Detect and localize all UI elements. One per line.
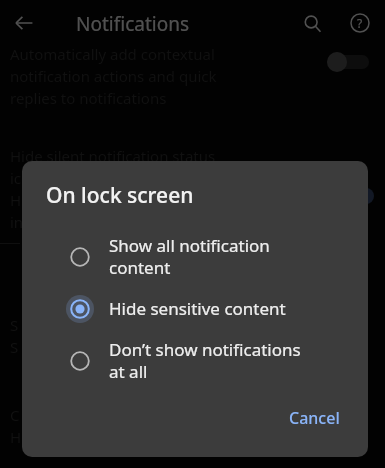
button[interactable]: Don’t show notifications at all	[22, 332, 368, 389]
staticText: replies to notifications	[10, 88, 167, 108]
staticText: ?	[357, 15, 363, 31]
staticText: Automatically add contextual	[10, 44, 215, 64]
button[interactable]: Cancel	[279, 401, 350, 435]
staticText: C	[10, 405, 20, 425]
staticText: in	[10, 212, 24, 232]
button[interactable]: Help	[344, 7, 376, 39]
button[interactable]: Toggle	[327, 51, 369, 73]
staticText: S	[10, 337, 19, 357]
staticText: Cancel	[289, 407, 340, 429]
staticText: S	[10, 315, 19, 335]
staticText: Hide sensitive content	[109, 297, 286, 320]
staticText: On lock screen	[46, 181, 194, 210]
staticText: Hide silent notification status	[10, 146, 216, 166]
staticText: Don’t show notifications at all	[109, 338, 301, 383]
button[interactable]: Show all notification content	[22, 228, 368, 285]
staticText: H	[10, 427, 22, 447]
staticText: ic	[10, 168, 22, 188]
button[interactable]: Search	[296, 7, 328, 39]
staticText: H	[10, 190, 22, 210]
button[interactable]: Back	[8, 7, 40, 39]
staticText: Notifications	[76, 11, 190, 37]
staticText: notification actions and quick	[10, 66, 217, 86]
button[interactable]: Hide sensitive content	[22, 285, 368, 332]
staticText: Show all notification content	[109, 234, 270, 279]
